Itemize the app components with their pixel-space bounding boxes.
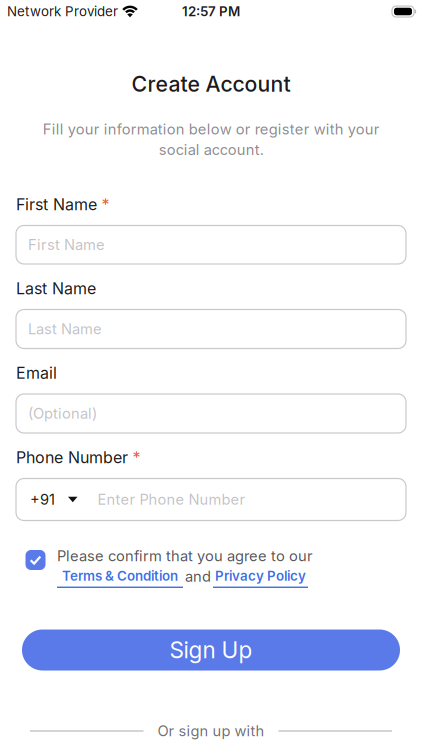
button[interactable]: (Optional) bbox=[16, 394, 406, 433]
staticText: 12:57 PM bbox=[182, 4, 240, 19]
staticText: Or sign up with bbox=[157, 722, 264, 740]
staticText: Please confirm that you agree to our bbox=[57, 547, 313, 565]
button[interactable]: Agree to terms bbox=[25, 550, 45, 570]
staticText: Fill your information below or register … bbox=[42, 121, 379, 158]
staticText: First Name bbox=[28, 236, 105, 253]
button[interactable]: Terms & Condition bbox=[57, 568, 183, 588]
staticText: * bbox=[132, 448, 140, 467]
staticText: +91 bbox=[30, 491, 55, 508]
staticText: Terms & Condition bbox=[62, 568, 178, 584]
staticText: Privacy Policy bbox=[215, 568, 306, 584]
button[interactable]: Country code +91 bbox=[30, 491, 77, 508]
staticText: Sign Up bbox=[169, 637, 252, 663]
staticText: Phone Number bbox=[16, 448, 128, 467]
button[interactable]: Enter Phone Number bbox=[16, 478, 406, 520]
button[interactable]: Last Name bbox=[16, 309, 406, 348]
button[interactable]: Sign Up bbox=[22, 629, 400, 670]
staticText: Email bbox=[16, 364, 57, 382]
button[interactable]: First Name bbox=[16, 225, 406, 264]
staticText: and bbox=[185, 568, 211, 585]
staticText: * bbox=[101, 195, 109, 214]
staticText: Last Name bbox=[28, 320, 102, 338]
button[interactable]: Privacy Policy bbox=[213, 568, 308, 588]
staticText: Enter Phone Number bbox=[97, 491, 245, 508]
staticText: First Name bbox=[16, 195, 97, 214]
staticText: (Optional) bbox=[28, 405, 97, 422]
staticText: Network Provider bbox=[7, 4, 118, 19]
staticText: Create Account bbox=[131, 71, 290, 97]
staticText: Last Name bbox=[16, 279, 96, 298]
